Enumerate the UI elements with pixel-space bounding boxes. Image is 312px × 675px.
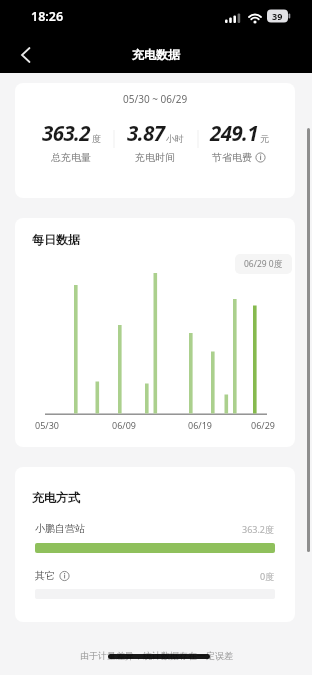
- staticText: 363.2: [42, 119, 91, 147]
- button[interactable]: [255, 152, 266, 163]
- staticText: 由于计量差异，统计数据存在一定误差: [80, 650, 233, 661]
- staticText: 363.2度: [242, 523, 275, 535]
- staticText: 18:26: [31, 8, 64, 25]
- staticText: 05/30 ~ 06/29: [123, 92, 188, 106]
- staticText: 节省电费: [212, 151, 252, 164]
- staticText: 度: [92, 133, 101, 144]
- button[interactable]: 其它: [35, 569, 275, 582]
- staticText: 充电方式: [32, 490, 80, 505]
- staticText: 总充电量: [51, 151, 91, 164]
- button[interactable]: 小鹏自营站: [35, 522, 275, 535]
- staticText: 每日数据: [32, 232, 80, 247]
- staticText: 06/29: [251, 419, 275, 431]
- staticText: 小鹏自营站: [35, 522, 85, 535]
- staticText: 05/30: [35, 419, 59, 431]
- staticText: 其它: [35, 569, 55, 582]
- staticText: 39: [272, 10, 283, 22]
- staticText: 06/19: [188, 419, 212, 431]
- staticText: 元: [260, 133, 269, 144]
- button[interactable]: [59, 570, 70, 581]
- staticText: 06/09: [112, 419, 136, 431]
- button[interactable]: 06/29 0度: [235, 254, 292, 274]
- staticText: 249.1: [210, 119, 259, 147]
- staticText: 0度: [260, 570, 275, 582]
- staticText: 充电时间: [135, 151, 175, 164]
- button[interactable]: [12, 42, 40, 68]
- staticText: 3.87: [127, 119, 165, 147]
- staticText: 小时: [166, 133, 184, 144]
- staticText: 06/29 0度: [244, 258, 283, 270]
- staticText: 充电数据: [132, 47, 180, 62]
